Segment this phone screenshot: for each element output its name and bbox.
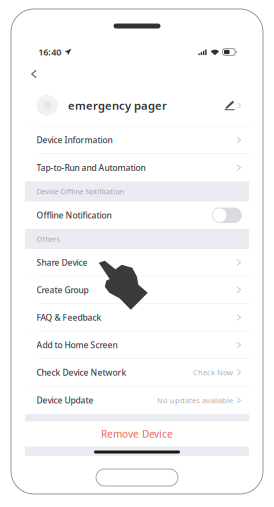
button[interactable]: Remove Device [25, 421, 249, 446]
staticText: Device Offline Notification [37, 187, 124, 196]
staticText: Device Update [37, 394, 94, 406]
button[interactable]: FAQ & Feedback [25, 304, 249, 331]
staticText: Share Device [37, 257, 88, 268]
button[interactable]: Offline Notification [25, 201, 249, 229]
staticText: Check Device Network [37, 367, 127, 378]
button[interactable]: Check Device Network [25, 359, 249, 386]
staticText: Offline Notification [37, 209, 112, 221]
button[interactable]: Device Update [25, 386, 249, 414]
staticText: No updates available [157, 395, 233, 405]
button[interactable]: Tap-to-Run and Automation [25, 154, 249, 181]
staticText: Others [37, 234, 60, 244]
staticText: Check Now [193, 367, 233, 377]
staticText: Create Group [37, 284, 89, 296]
button[interactable]: Back [25, 63, 46, 85]
staticText: FAQ & Feedback [37, 312, 102, 323]
button[interactable]: Share Device [25, 249, 249, 276]
staticText: Remove Device [101, 427, 173, 441]
staticText: emergency pager [68, 98, 167, 113]
staticText: Tap-to-Run and Automation [37, 162, 146, 173]
button[interactable]: Device Information [25, 126, 249, 154]
staticText: Device Information [37, 134, 113, 146]
button[interactable]: Create Group [25, 276, 249, 304]
button[interactable]: emergency pager [25, 85, 249, 126]
staticText: Add to Home Screen [37, 339, 118, 351]
button[interactable]: Add to Home Screen [25, 331, 249, 359]
staticText: 16:40 [38, 46, 61, 58]
